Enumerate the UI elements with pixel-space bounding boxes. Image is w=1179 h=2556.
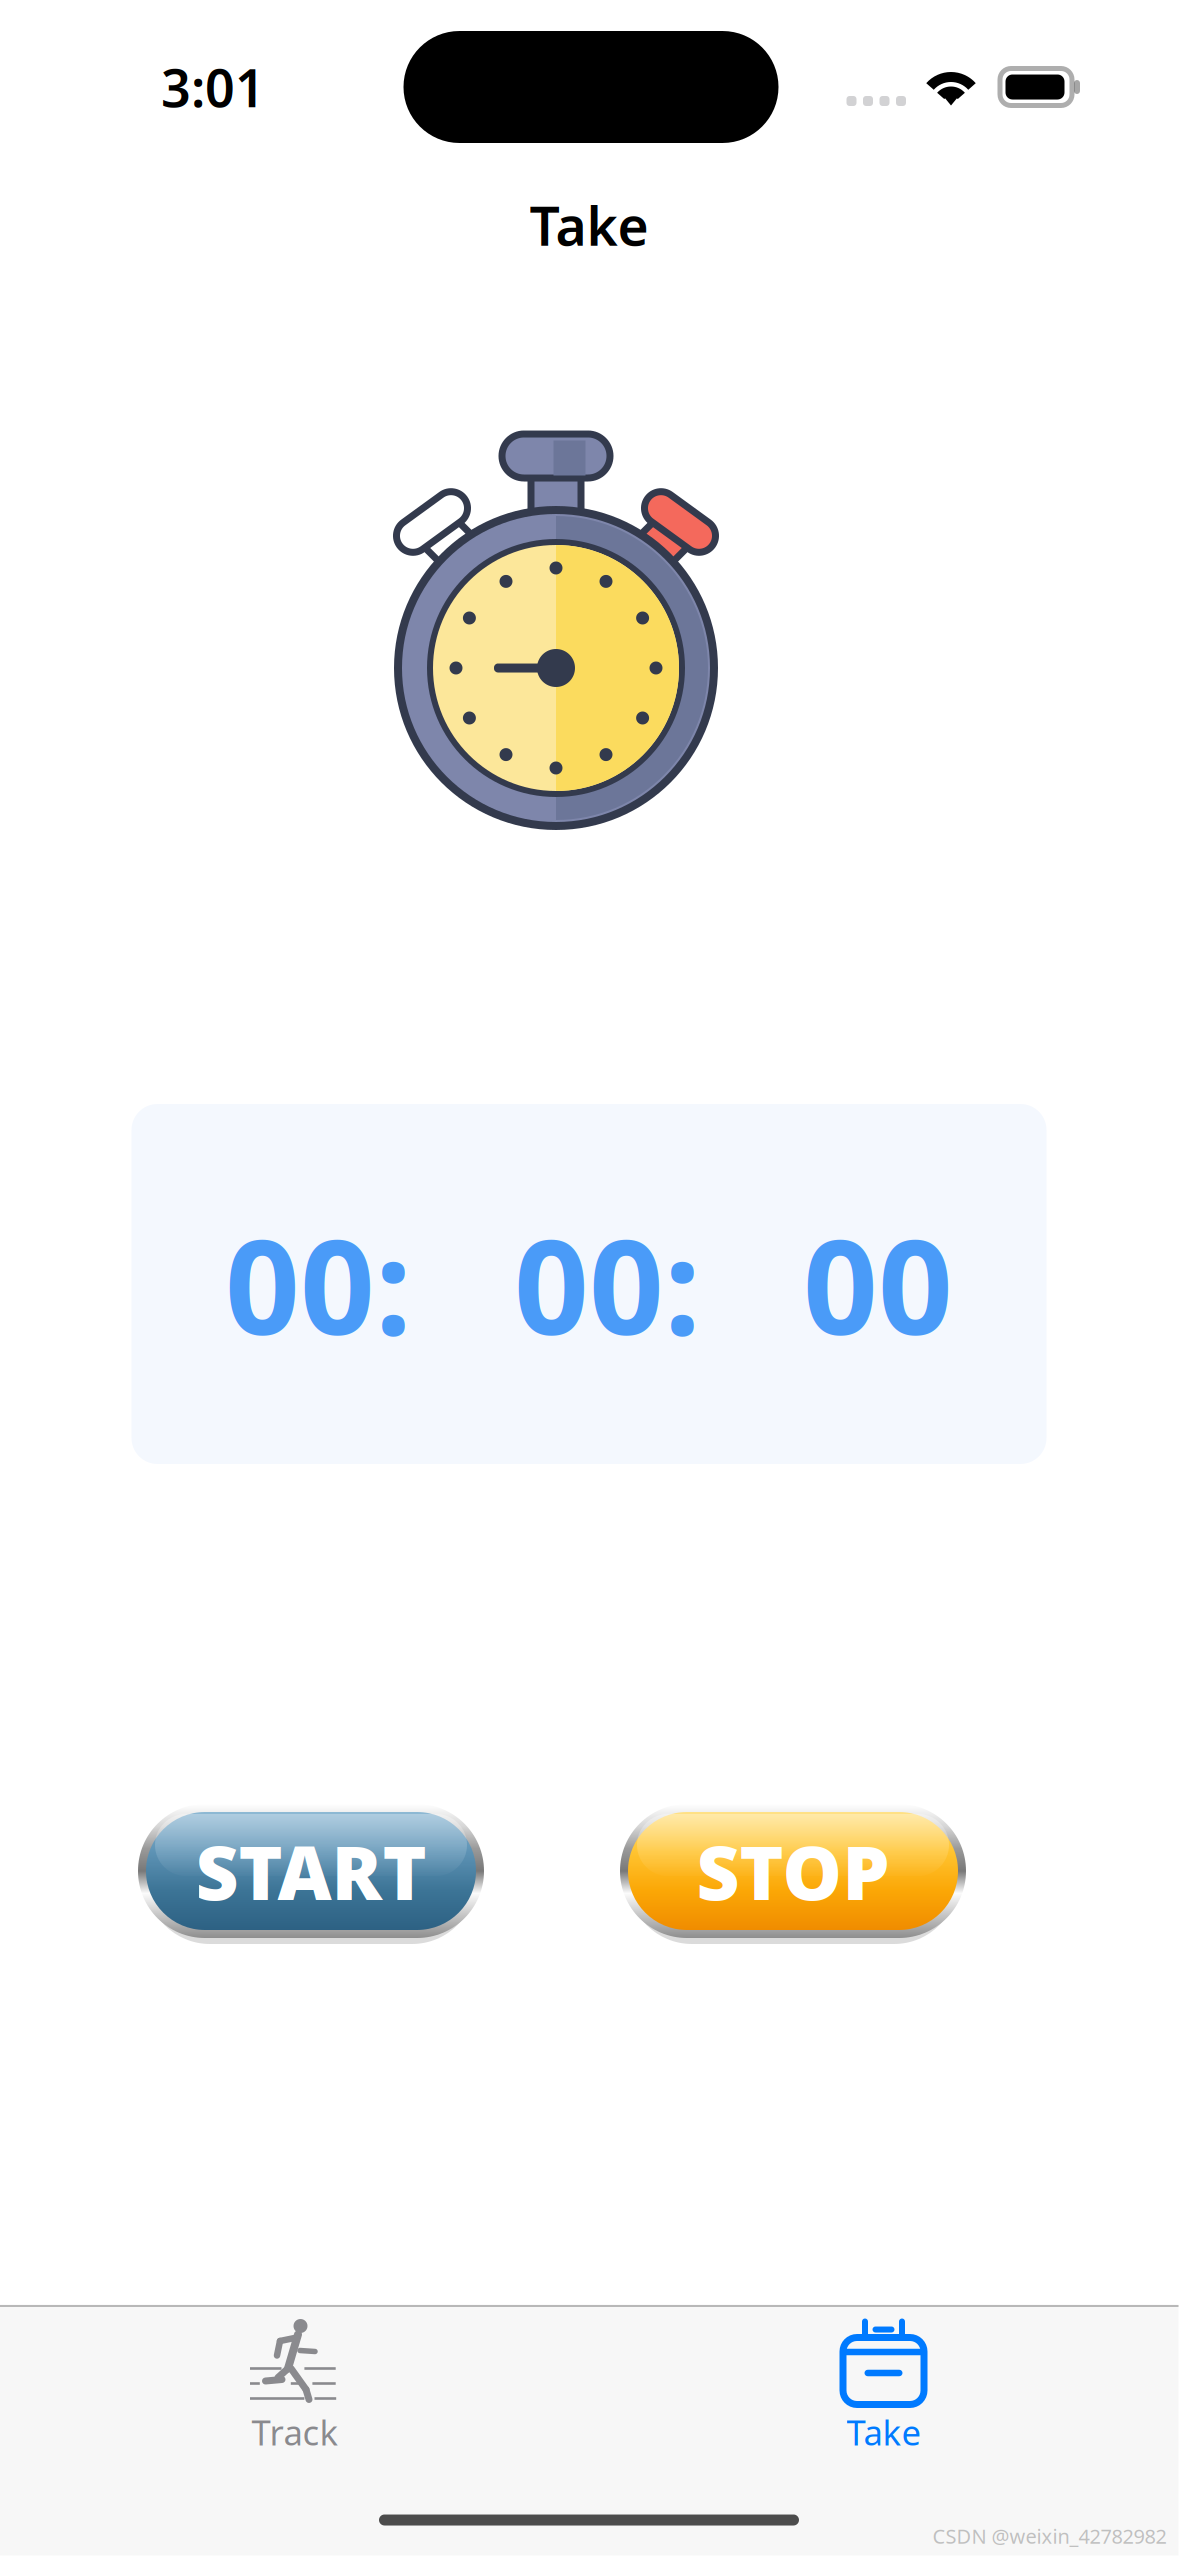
button[interactable]: START [135, 1796, 487, 1946]
staticText: CSDN @weixin_42782982 [932, 2523, 1166, 2549]
button[interactable]: STOP [617, 1796, 969, 1946]
staticText: STOP [696, 1821, 889, 1921]
button[interactable]: Track [148, 2307, 442, 2459]
staticText: Take [529, 190, 648, 260]
staticText: 00: 00: 00 [225, 1197, 953, 1371]
button[interactable]: Take [737, 2307, 1031, 2459]
staticText: START [195, 1821, 426, 1921]
staticText: Take [846, 2409, 921, 2455]
staticText: 3:01 [161, 52, 265, 122]
staticText: Track [251, 2409, 338, 2455]
